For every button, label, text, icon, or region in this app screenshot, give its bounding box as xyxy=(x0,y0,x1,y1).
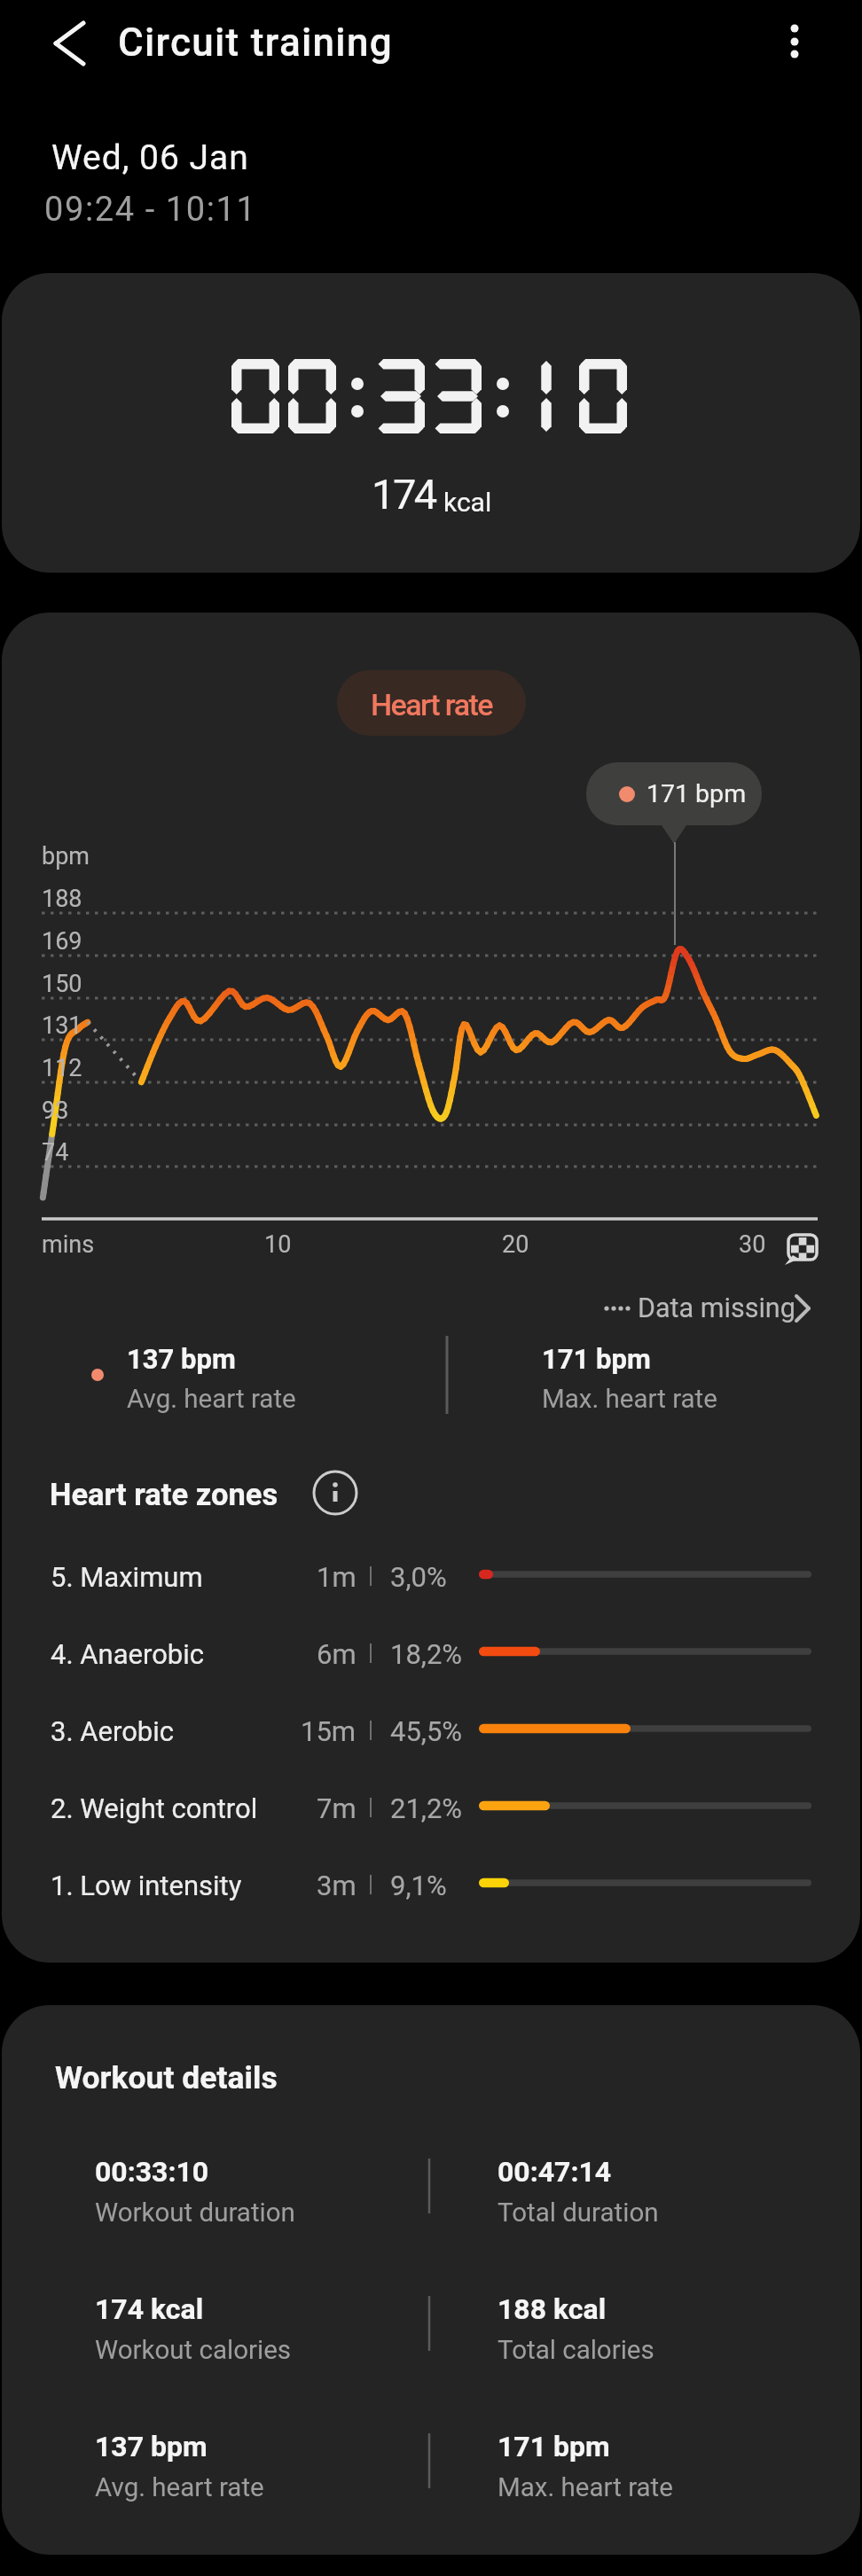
staticText: Total duration xyxy=(498,2197,659,2229)
staticText: Data missing xyxy=(638,1292,795,1324)
staticText: 09:24 - 10:11 xyxy=(44,190,257,230)
staticText: Heart rate xyxy=(371,687,492,722)
staticText: 3. Aerobic xyxy=(51,1715,175,1747)
staticText: 10 xyxy=(264,1230,292,1259)
staticText: 93 xyxy=(42,1097,69,1125)
staticText: bpm xyxy=(42,842,90,870)
staticText: 131 xyxy=(42,1011,82,1040)
button[interactable] xyxy=(768,9,823,78)
staticText: Avg. heart rate xyxy=(127,1384,296,1415)
staticText: 6m xyxy=(317,1638,357,1670)
staticText: Max. heart rate xyxy=(542,1384,717,1415)
staticText: 00:33:10 xyxy=(95,2155,209,2189)
staticText: 45,5% xyxy=(390,1715,463,1747)
button[interactable]: Heart rate xyxy=(337,670,526,736)
staticText: 9,1% xyxy=(390,1870,447,1901)
staticText: 1m xyxy=(317,1561,357,1593)
staticText: 174 kcal xyxy=(95,2292,204,2326)
staticText: 171 bpm xyxy=(646,779,747,808)
staticText: 00:47:14 xyxy=(498,2155,612,2189)
staticText: kcal xyxy=(443,487,492,518)
staticText: 18,2% xyxy=(390,1638,463,1670)
staticText: 1. Low intensity xyxy=(51,1870,242,1901)
staticText: Wed, 06 Jan xyxy=(51,137,249,178)
staticText: 5. Maximum xyxy=(51,1561,203,1593)
staticText: 15m xyxy=(301,1715,357,1747)
staticText: 188 kcal xyxy=(498,2292,607,2326)
staticText: Avg. heart rate xyxy=(95,2472,264,2503)
staticText: 171 bpm xyxy=(542,1343,651,1375)
staticText: Workout calories xyxy=(95,2335,292,2366)
staticText: Circuit training xyxy=(118,20,393,66)
staticText: 137 bpm xyxy=(127,1343,236,1375)
staticText: 21,2% xyxy=(390,1792,463,1824)
staticText: Heart rate zones xyxy=(50,1477,278,1512)
staticText: 20 xyxy=(502,1230,529,1259)
staticText: 3m xyxy=(317,1870,357,1901)
staticText: 188 xyxy=(42,885,82,913)
staticText: Max. heart rate xyxy=(498,2472,673,2503)
staticText: 137 bpm xyxy=(95,2430,208,2463)
button[interactable] xyxy=(40,9,100,78)
staticText: 30 xyxy=(739,1230,766,1259)
staticText: Workout details xyxy=(55,2059,278,2096)
staticText: Total calories xyxy=(498,2335,654,2366)
staticText: 2. Weight control xyxy=(51,1792,258,1824)
staticText: mins xyxy=(42,1230,95,1259)
staticText: 150 xyxy=(42,970,82,998)
staticText: 74 xyxy=(42,1138,69,1167)
staticText: 7m xyxy=(317,1792,357,1824)
staticText: 174 xyxy=(372,470,435,519)
staticText: 4. Anaerobic xyxy=(51,1638,204,1670)
staticText: 169 xyxy=(42,927,82,956)
staticText: 3,0% xyxy=(390,1561,447,1593)
staticText: Workout duration xyxy=(95,2197,295,2229)
button[interactable] xyxy=(312,1470,358,1516)
staticText: 171 bpm xyxy=(498,2430,610,2463)
staticText: 112 xyxy=(42,1054,82,1082)
button[interactable]: Data missing xyxy=(585,1284,818,1333)
